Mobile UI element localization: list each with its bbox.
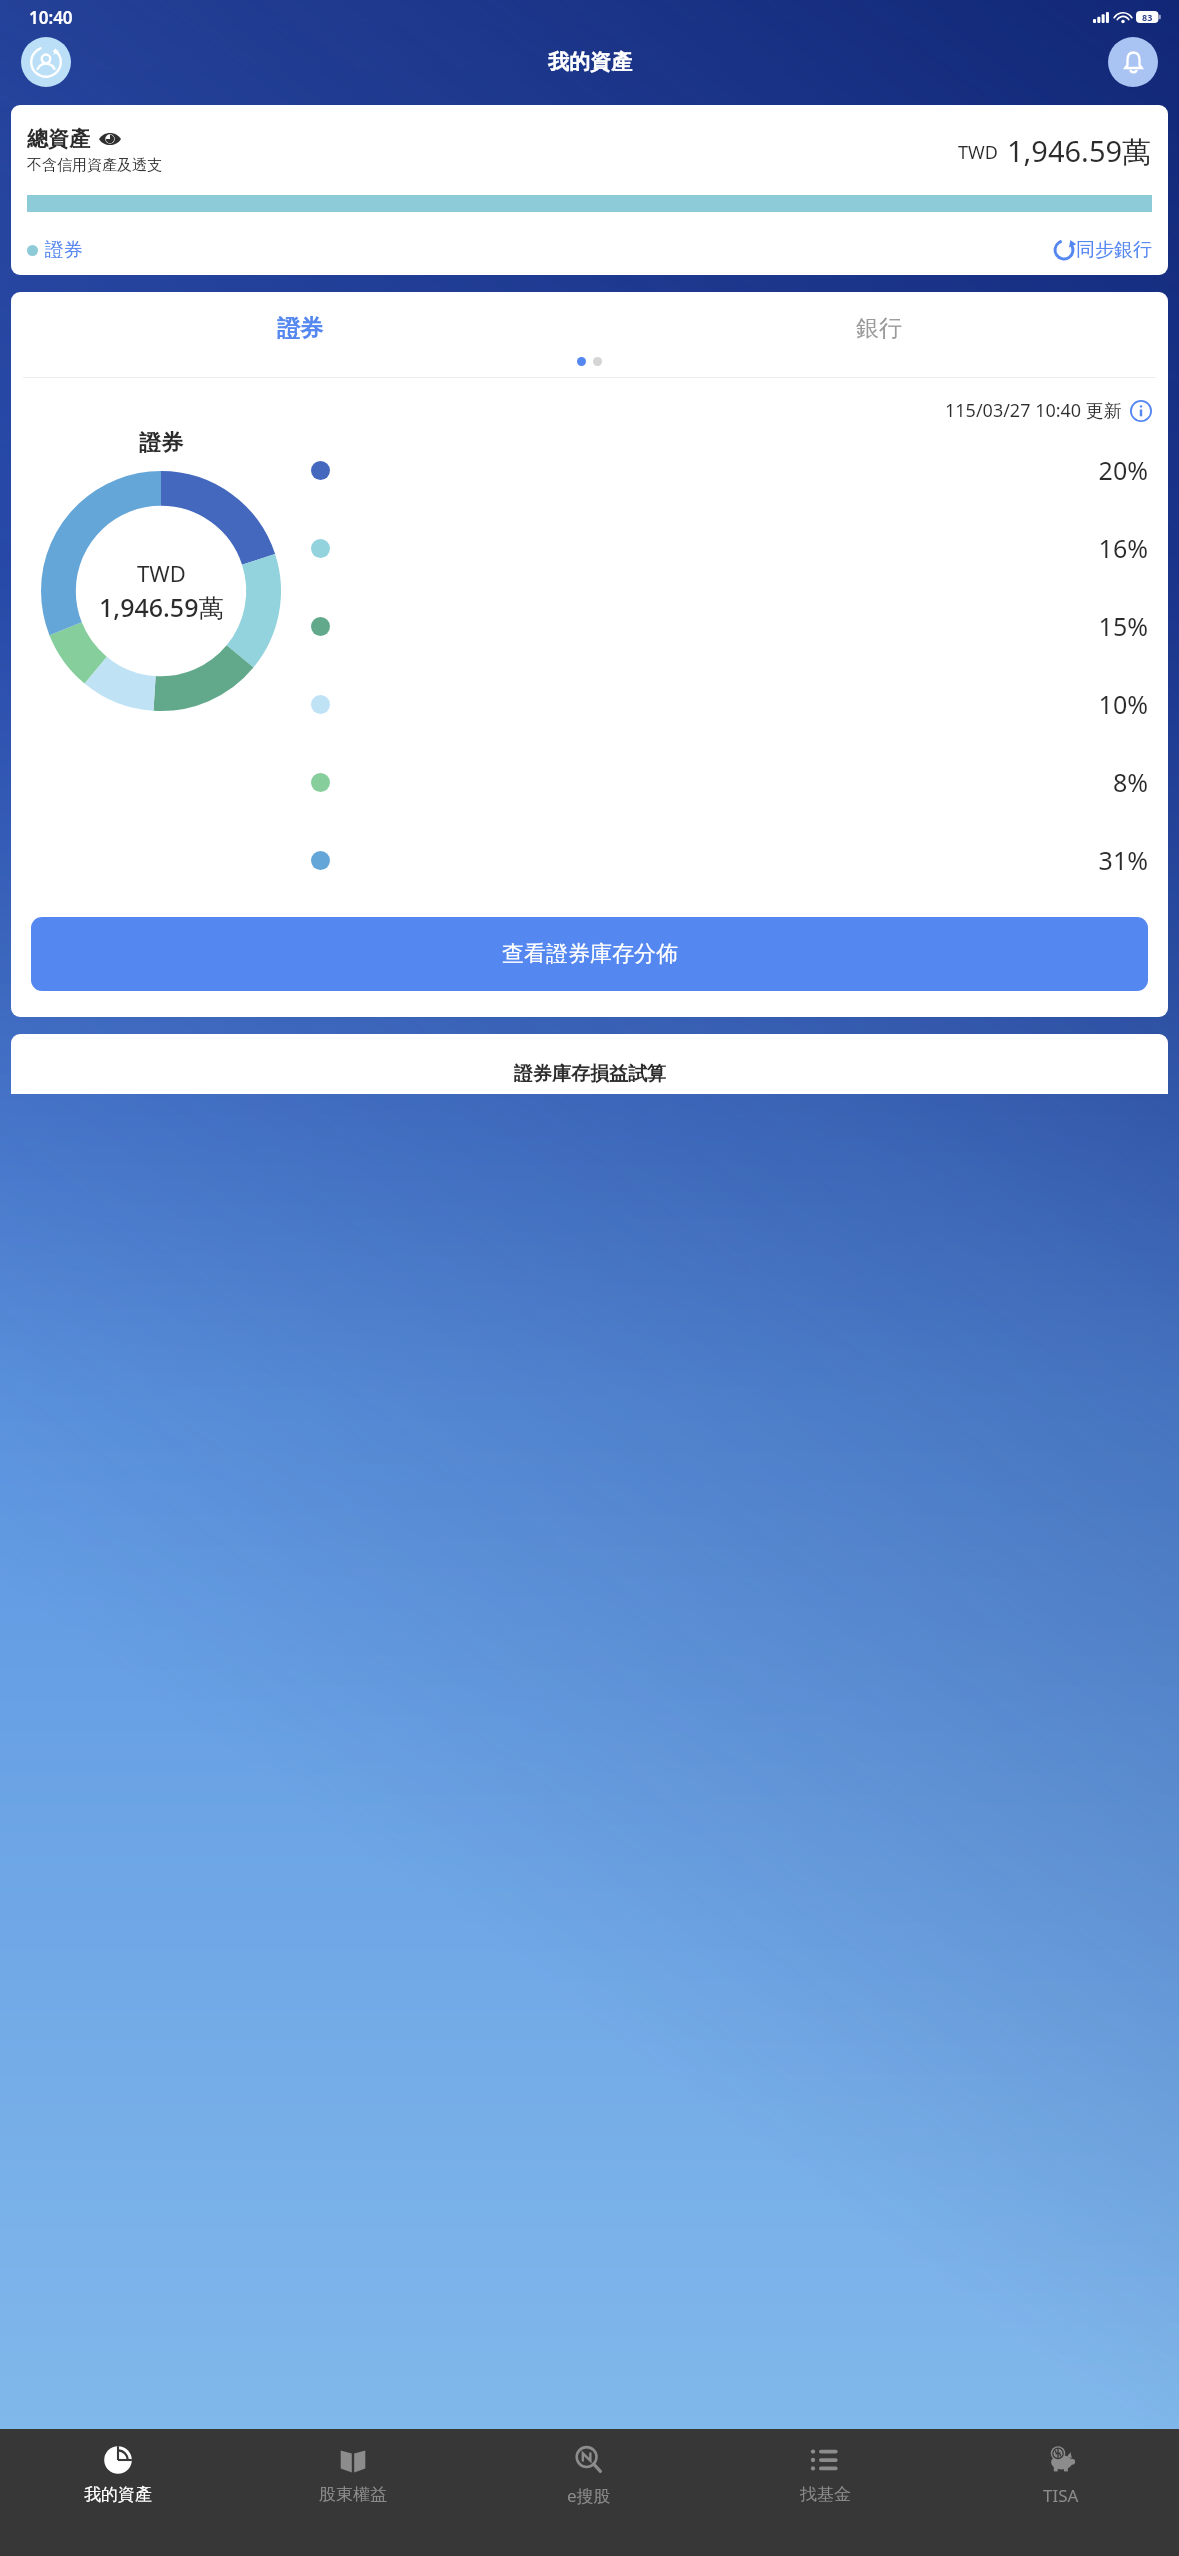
button[interactable]: 找基金 — [707, 2429, 943, 2556]
button[interactable]: 證券 — [27, 238, 83, 262]
staticText: 找基金 — [800, 2484, 851, 2505]
staticText: 證券 — [45, 238, 83, 262]
button[interactable]: 15% — [311, 587, 1148, 665]
button[interactable]: Notifications — [1108, 37, 1158, 87]
staticText: 115/03/27 10:40 更新 — [945, 398, 1122, 423]
staticText: 證券 — [139, 429, 183, 457]
staticText: 10% — [1098, 687, 1148, 721]
staticText: 銀行 — [856, 314, 902, 343]
button[interactable]: TISA — [943, 2429, 1179, 2556]
button[interactable]: 8% — [311, 743, 1148, 821]
button[interactable]: 10% — [311, 665, 1148, 743]
button[interactable]: 同步銀行 — [1052, 238, 1152, 262]
button[interactable]: 31% — [311, 821, 1148, 899]
button[interactable]: Info — [1130, 400, 1152, 422]
button[interactable]: 查看證券庫存分佈 — [31, 917, 1148, 991]
staticText: TISA — [1043, 2484, 1079, 2507]
button[interactable]: 20% — [311, 431, 1148, 509]
staticText: 15% — [1098, 609, 1148, 643]
staticText: 股東權益 — [319, 2484, 387, 2505]
staticText: 8% — [1112, 765, 1148, 799]
staticText: TWD — [958, 140, 998, 165]
staticText: e搜股 — [567, 2484, 611, 2507]
button[interactable]: 證券庫存損益試算 — [11, 1034, 1168, 1094]
button[interactable]: 股東權益 — [235, 2429, 471, 2556]
staticText: 10:40 — [29, 6, 73, 29]
staticText: 總資產 — [27, 126, 90, 152]
button[interactable]: 銀行 — [589, 314, 1168, 343]
staticText: 查看證券庫存分佈 — [502, 940, 678, 968]
staticText: TWD — [137, 558, 186, 588]
staticText: 1,946.59萬 — [99, 590, 224, 624]
staticText: 我的資產 — [548, 49, 632, 75]
staticText: 不含信用資產及透支 — [27, 156, 162, 175]
staticText: 83 — [1142, 11, 1153, 23]
button[interactable]: 總資產 — [11, 105, 1168, 275]
button[interactable]: Toggle visibility — [98, 127, 122, 151]
staticText: 同步銀行 — [1076, 238, 1152, 262]
button[interactable]: 16% — [311, 509, 1148, 587]
staticText: 證券 — [277, 314, 323, 343]
staticText: 證券庫存損益試算 — [514, 1062, 666, 1086]
button[interactable]: 證券 — [11, 314, 589, 343]
staticText: 31% — [1098, 843, 1148, 877]
staticText: 16% — [1098, 531, 1148, 565]
staticText: 我的資產 — [84, 2484, 152, 2505]
button[interactable]: e搜股 — [471, 2429, 707, 2556]
staticText: 1,946.59萬 — [1007, 131, 1152, 171]
button[interactable]: Profile — [21, 37, 71, 87]
button[interactable]: 我的資產 — [0, 2429, 235, 2556]
staticText: 20% — [1098, 453, 1148, 487]
